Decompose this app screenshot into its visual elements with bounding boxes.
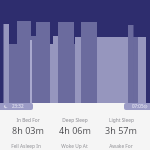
staticText: Deep Sleep	[62, 117, 88, 124]
button[interactable]: Light Sleep	[91, 112, 150, 140]
staticText: In Bed For	[16, 117, 40, 124]
staticText: Light Sleep	[109, 117, 134, 124]
staticText: Fell Asleep In	[11, 143, 41, 150]
staticText: 3h 57m	[105, 124, 137, 136]
button[interactable]	[0, 103, 33, 110]
staticText: 4h 06m	[59, 124, 91, 136]
staticText: 8h 03m	[12, 124, 44, 136]
staticText: 23:32	[12, 103, 24, 109]
staticText: 07:05	[132, 103, 144, 109]
button[interactable]: In Bed For	[0, 112, 58, 140]
staticText: Awake For	[109, 143, 133, 150]
staticText: Woke Up At	[61, 143, 88, 150]
button[interactable]: Deep Sleep	[45, 112, 105, 140]
button[interactable]	[124, 103, 150, 110]
